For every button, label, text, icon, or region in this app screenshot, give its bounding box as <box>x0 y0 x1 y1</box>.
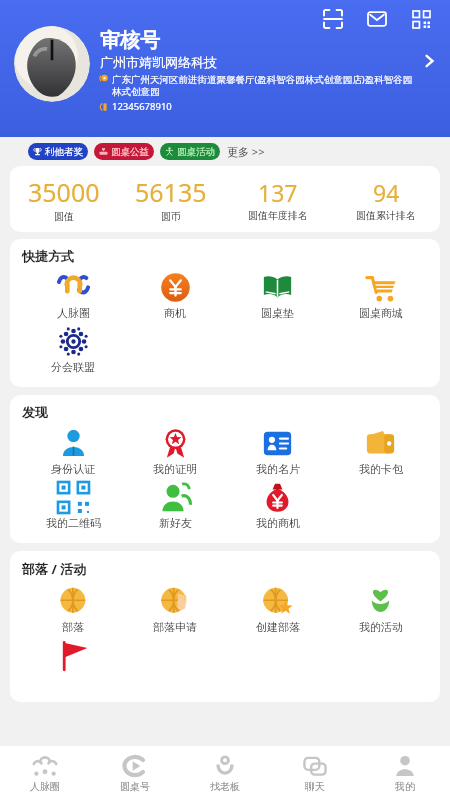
staticText: 137 <box>258 177 298 208</box>
staticText: 人脉圈 <box>57 306 90 320</box>
staticText: 广州市靖凯网络科技 <box>100 54 217 70</box>
button[interactable]: 审核号 <box>14 26 442 113</box>
staticText: 人脉圈 <box>30 780 60 793</box>
button[interactable]: QR code <box>406 4 436 34</box>
staticText: 快捷方式 <box>22 248 74 264</box>
staticText: 我的活动 <box>359 620 403 634</box>
staticText: 圆值累计排名 <box>356 209 416 222</box>
button[interactable]: 圆桌垫 <box>226 269 329 323</box>
button[interactable]: 部落申请 <box>124 583 226 637</box>
button[interactable] <box>22 637 124 692</box>
staticText: 12345678910 <box>112 100 172 113</box>
button[interactable]: Messages <box>362 4 392 34</box>
button[interactable]: 35000 <box>10 175 117 223</box>
button[interactable]: Scan <box>318 4 348 34</box>
staticText: 我的证明 <box>153 462 197 476</box>
staticText: 更多 >> <box>227 144 265 159</box>
staticText: 圆值 <box>54 210 74 223</box>
button[interactable]: 身份认证 <box>22 425 124 479</box>
staticText: 找老板 <box>210 780 240 793</box>
staticText: 聊天 <box>305 780 325 793</box>
staticText: 我的 <box>395 780 415 793</box>
button[interactable]: 我的证明 <box>124 425 226 479</box>
staticText: 广东广州天河区前进街道聚馨餐厅(盈科智谷园林式创意园店)盈科智谷园林式创意园 <box>112 73 416 98</box>
button[interactable]: 56135 <box>117 175 224 223</box>
staticText: 圆桌垫 <box>261 306 294 320</box>
staticText: 圆桌号 <box>120 780 150 793</box>
button[interactable]: 创建部落 <box>226 583 329 637</box>
staticText: 圆币 <box>161 210 181 223</box>
staticText: 我的商机 <box>256 516 300 530</box>
staticText: 圆桌商城 <box>359 306 403 320</box>
button[interactable]: 我的二维码 <box>22 479 124 533</box>
staticText: 商机 <box>164 306 186 320</box>
button[interactable]: 找老板 <box>180 746 270 800</box>
button[interactable]: 圆桌公益 <box>94 143 154 160</box>
button[interactable]: 137 <box>224 177 332 222</box>
staticText: 部落 / 活动 <box>22 560 87 578</box>
button[interactable]: More <box>416 48 442 74</box>
button[interactable]: 新好友 <box>124 479 226 533</box>
button[interactable]: 利他者奖 <box>28 143 88 160</box>
button[interactable]: 我的 <box>360 746 450 800</box>
staticText: 发现 <box>22 404 48 420</box>
button[interactable]: 圆桌商城 <box>329 269 432 323</box>
staticText: 新好友 <box>159 516 192 530</box>
button[interactable]: 94 <box>332 177 440 222</box>
button[interactable]: 聊天 <box>270 746 360 800</box>
staticText: 94 <box>373 177 400 208</box>
staticText: 圆桌公益 <box>111 146 149 158</box>
staticText: 圆桌活动 <box>177 146 215 158</box>
staticText: 利他者奖 <box>45 146 83 158</box>
staticText: 我的二维码 <box>46 516 101 530</box>
staticText: 圆值年度排名 <box>248 209 308 222</box>
button[interactable]: 分会联盟 <box>22 323 124 377</box>
button[interactable]: 我的卡包 <box>329 425 432 479</box>
staticText: 审核号 <box>100 28 160 53</box>
button[interactable]: 我的商机 <box>226 479 329 533</box>
staticText: 创建部落 <box>256 620 300 634</box>
button[interactable]: 商机 <box>124 269 226 323</box>
button[interactable]: 圆桌号 <box>90 746 180 800</box>
staticText: 部落 <box>62 620 84 634</box>
staticText: 分会联盟 <box>51 360 95 374</box>
staticText: 身份认证 <box>51 462 95 476</box>
staticText: 我的名片 <box>256 462 300 476</box>
staticText: 部落申请 <box>153 620 197 634</box>
button[interactable]: 我的活动 <box>329 583 432 637</box>
staticText: 56135 <box>135 175 207 209</box>
button[interactable]: 人脉圈 <box>0 746 90 800</box>
button[interactable]: 我的名片 <box>226 425 329 479</box>
staticText: 我的卡包 <box>359 462 403 476</box>
button[interactable]: 部落 <box>22 583 124 637</box>
button[interactable]: 圆桌活动 <box>160 143 220 160</box>
staticText: 35000 <box>28 175 100 209</box>
button[interactable]: 人脉圈 <box>22 269 124 323</box>
